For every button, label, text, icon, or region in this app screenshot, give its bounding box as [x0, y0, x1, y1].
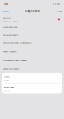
- button[interactable]: Samples mode: [0, 67, 64, 70]
- button[interactable]: Environment: [0, 33, 64, 36]
- button[interactable]: Done: [55, 8, 64, 14]
- staticText: Push/SSE: [4, 85, 14, 89]
- button[interactable]: Push/SSE: [2, 83, 62, 93]
- staticText: ›: [59, 76, 60, 80]
- button[interactable]: Analytics and moni: [0, 58, 64, 62]
- button[interactable]: ‹: [0, 8, 10, 14]
- staticText: token: [4, 79, 9, 82]
- button[interactable]: Build: [0, 16, 64, 23]
- staticText: Synchronized network a: [3, 41, 31, 44]
- staticText: Analytics and moni: [3, 58, 27, 62]
- staticText: Build: [3, 16, 11, 19]
- staticText: Done: [57, 9, 62, 13]
- staticText: ‹: [2, 9, 3, 13]
- staticText: Back: [3, 9, 8, 13]
- staticText: Samples mode: [3, 67, 19, 70]
- button[interactable]: APNs: [2, 73, 62, 83]
- staticText: Diagnostics: [24, 9, 39, 13]
- staticText: active: [4, 89, 10, 92]
- button[interactable]: Synchronized network a: [0, 41, 64, 44]
- staticText: 2025.9.1 (4821): [3, 20, 18, 23]
- staticText: Data Sources: [3, 25, 17, 29]
- staticText: APNs: [4, 75, 10, 78]
- button[interactable]: Data Sources: [0, 25, 64, 29]
- staticText: 9:41: [4, 2, 8, 6]
- staticText: Web usage: [3, 50, 16, 53]
- button[interactable]: Web usage: [0, 50, 64, 53]
- staticText: Environment: [3, 33, 18, 36]
